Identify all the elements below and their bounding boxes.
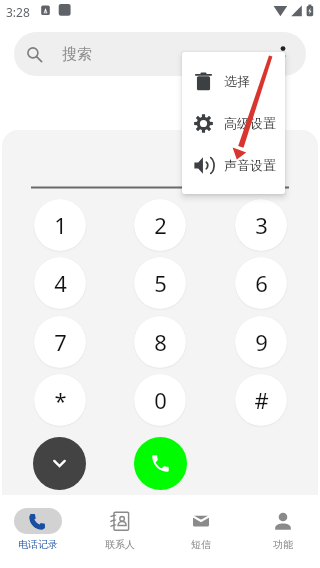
staticText: 搜索 bbox=[62, 45, 92, 64]
staticText: 3 bbox=[255, 210, 268, 240]
staticText: 声音设置 bbox=[224, 157, 276, 173]
staticText: * bbox=[54, 385, 67, 415]
button[interactable]: Hide keypad bbox=[33, 437, 86, 490]
button[interactable]: 短信 bbox=[161, 495, 241, 568]
staticText: 联系人 bbox=[105, 538, 135, 551]
button[interactable]: 0 bbox=[134, 374, 186, 426]
staticText: 高级设置 bbox=[224, 115, 276, 131]
staticText: 0 bbox=[154, 385, 167, 415]
staticText: 9 bbox=[255, 327, 268, 357]
staticText: 6 bbox=[255, 268, 268, 298]
button[interactable]: 联系人 bbox=[80, 495, 160, 568]
button[interactable]: # bbox=[235, 374, 287, 426]
button[interactable]: * bbox=[34, 374, 86, 426]
button[interactable]: 声音设置 bbox=[182, 144, 285, 186]
staticText: 选择 bbox=[224, 73, 250, 89]
button[interactable]: 电话记录 bbox=[0, 495, 78, 568]
staticText: 短信 bbox=[191, 538, 211, 551]
button[interactable]: 5 bbox=[134, 257, 186, 309]
button[interactable]: 8 bbox=[134, 316, 186, 368]
staticText: # bbox=[254, 385, 269, 415]
other: Annotation arrow bbox=[0, 0, 320, 568]
button[interactable]: 功能 bbox=[243, 495, 320, 568]
staticText: 电话记录 bbox=[18, 538, 58, 551]
staticText: 1 bbox=[54, 210, 67, 240]
staticText: 7 bbox=[54, 327, 67, 357]
staticText: 3:28 bbox=[6, 4, 30, 20]
button[interactable]: 6 bbox=[235, 257, 287, 309]
button[interactable]: 7 bbox=[34, 316, 86, 368]
button[interactable]: More options bbox=[268, 32, 298, 62]
button[interactable]: 搜索 bbox=[14, 32, 306, 76]
staticText: 5 bbox=[154, 268, 167, 298]
button[interactable]: 4 bbox=[34, 257, 86, 309]
button[interactable]: 1 bbox=[34, 199, 86, 251]
button[interactable]: 9 bbox=[235, 316, 287, 368]
staticText: 8 bbox=[154, 327, 167, 357]
button[interactable]: 2 bbox=[134, 199, 186, 251]
staticText: 功能 bbox=[273, 538, 293, 551]
staticText: 2 bbox=[154, 210, 167, 240]
button[interactable]: 高级设置 bbox=[182, 102, 285, 144]
button[interactable]: 3 bbox=[235, 199, 287, 251]
button[interactable]: Call bbox=[134, 437, 187, 490]
staticText: 4 bbox=[54, 268, 67, 298]
button[interactable]: 选择 bbox=[182, 60, 285, 102]
